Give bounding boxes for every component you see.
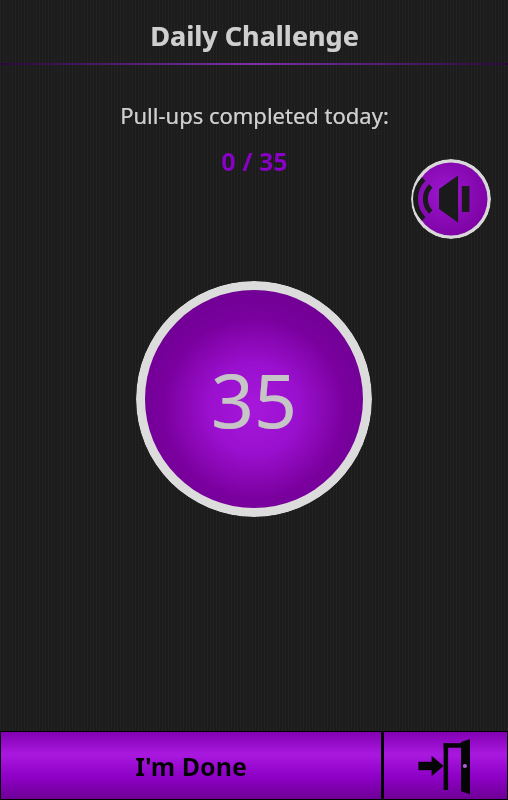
staticText: 0 / 35 [221,144,288,178]
staticText: I'm Done [135,749,247,783]
staticText: 35 [211,348,297,450]
button[interactable]: Toggle sound [411,159,491,239]
button[interactable]: Exit [384,732,507,799]
staticText: Daily Challenge [150,17,359,54]
button[interactable]: I'm Done [1,732,381,799]
button[interactable]: 35 [136,281,372,517]
staticText: Pull-ups completed today: [120,100,389,130]
